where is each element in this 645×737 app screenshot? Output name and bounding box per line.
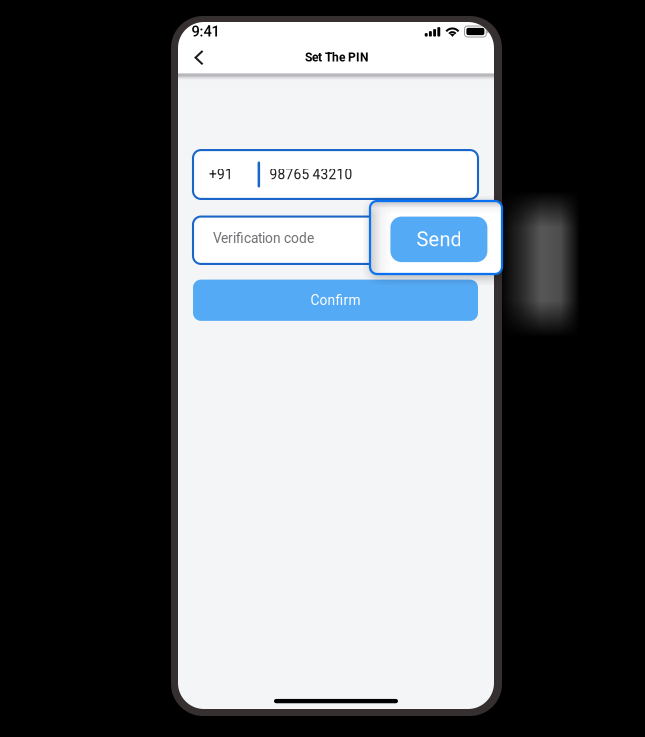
staticText: 9:41 bbox=[191, 23, 219, 40]
button[interactable]: Back bbox=[181, 40, 217, 76]
staticText: 98765 43210 bbox=[269, 166, 352, 183]
staticText: Confirm bbox=[310, 292, 360, 308]
staticText: +91 bbox=[209, 166, 233, 183]
button[interactable]: Confirm bbox=[193, 280, 478, 321]
staticText: Set The PIN bbox=[305, 50, 368, 64]
button[interactable]: Send bbox=[370, 201, 502, 274]
staticText: Verification code bbox=[213, 230, 314, 246]
staticText: Send bbox=[416, 228, 461, 251]
